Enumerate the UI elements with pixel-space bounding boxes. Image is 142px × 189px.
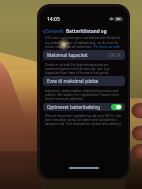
staticText: iPhone forsinker opladning ud over 80 %,…: [45, 113, 123, 127]
button[interactable]: Optimeret batteriladning slået til: [111, 104, 122, 110]
button[interactable]: Få mere at vide om batteritilstand: [45, 35, 123, 49]
button[interactable]: Tilbage til Generelt: [43, 28, 64, 34]
button[interactable]: Evne til maksimal ydelse: [43, 76, 125, 86]
button[interactable]: Optimeret batteriladning: [43, 103, 125, 111]
staticText: iOS viser oplysninger om batteriets tils…: [45, 35, 123, 49]
staticText: Maksimal kapacitet: [47, 52, 88, 58]
staticText: batteriet understøtter almindelig maksim…: [45, 88, 123, 102]
staticText: Dette er et mål for batterikapaciteten s…: [45, 62, 123, 76]
staticText: 14:05: [47, 16, 60, 22]
button[interactable]: Maksimal kapacitet: [43, 50, 125, 60]
staticText: Evne til maksimal ydelse: [47, 78, 99, 84]
staticText: Batteritilstand og -opladning: [66, 28, 124, 34]
staticText: 100 %: [108, 52, 121, 58]
staticText: Generelt: [46, 28, 64, 34]
staticText: Optimeret batteriladning: [47, 104, 100, 110]
